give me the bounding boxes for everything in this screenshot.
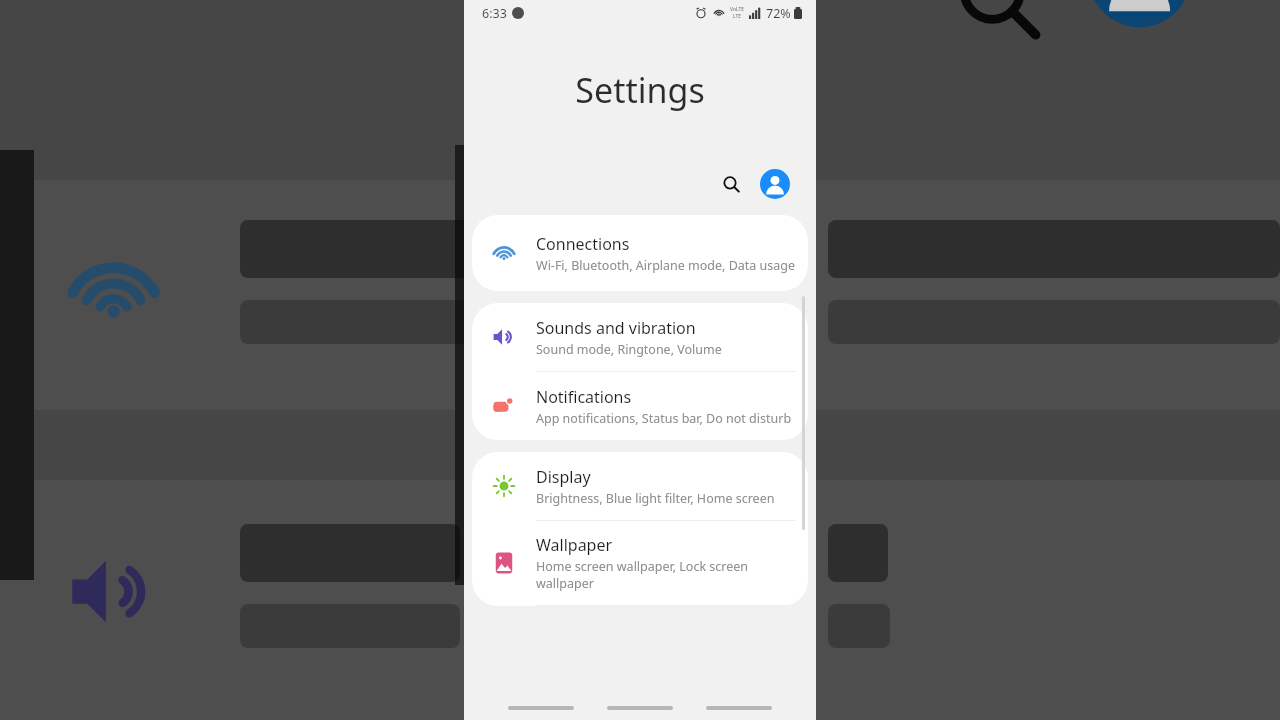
staticText: Notifications — [536, 386, 632, 408]
staticText: Brightness, Blue light filter, Home scre… — [536, 490, 775, 507]
button[interactable]: Display — [472, 452, 808, 520]
button[interactable]: Sounds and vibration — [472, 303, 808, 371]
button[interactable]: Navigation button — [607, 706, 673, 710]
staticText: 72% — [766, 5, 791, 22]
staticText: Connections — [536, 233, 630, 255]
staticText: Wallpaper — [536, 534, 613, 556]
staticText: LTE — [733, 13, 742, 20]
staticText: 6:33 — [482, 5, 507, 22]
button[interactable]: Navigation button — [508, 706, 574, 710]
staticText: App notifications, Status bar, Do not di… — [536, 410, 792, 427]
button[interactable]: Notifications — [472, 372, 808, 440]
staticText: VoLTE — [730, 6, 745, 13]
staticText: Sound mode, Ringtone, Volume — [536, 341, 722, 358]
staticText: Home screen wallpaper, Lock screen wallp… — [536, 558, 749, 592]
button[interactable]: Wallpaper — [472, 521, 808, 605]
staticText: Settings — [575, 67, 705, 113]
button[interactable]: Connections — [472, 215, 808, 291]
staticText: Wi-Fi, Bluetooth, Airplane mode, Data us… — [536, 257, 796, 274]
staticText: Sounds and vibration — [536, 317, 696, 339]
staticText: Display — [536, 466, 591, 488]
button[interactable]: Search — [710, 163, 752, 205]
button[interactable]: Samsung account — [754, 163, 796, 205]
button[interactable]: Navigation button — [706, 706, 772, 710]
